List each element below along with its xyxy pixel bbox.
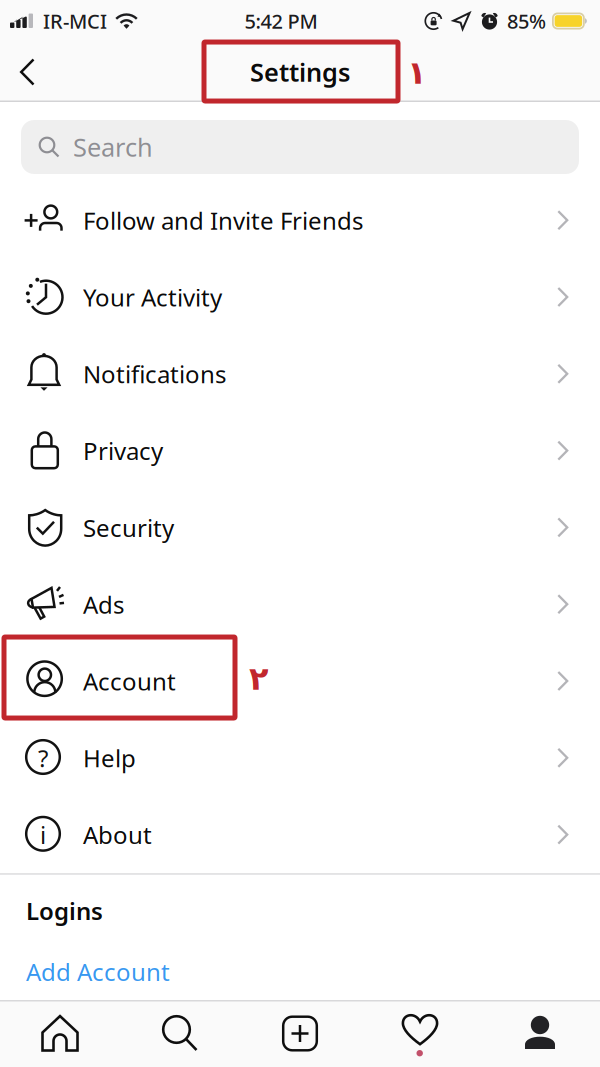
staticText: Privacy [83,435,163,467]
staticText: Search [73,130,153,164]
button[interactable]: Profile [480,1014,600,1052]
button[interactable]: Home [0,1014,120,1052]
staticText: Notifications [83,358,226,390]
staticText: IR-MCI [43,8,107,34]
staticText: Account [83,665,176,697]
button[interactable]: Account [0,643,600,720]
button[interactable]: Your Activity [0,259,600,336]
button[interactable]: Add Account [0,947,600,997]
staticText: ۲ [249,660,269,697]
staticText: Add Account [26,956,170,988]
staticText: i [40,819,46,851]
button[interactable]: New post [240,1014,360,1052]
staticText: ۱ [407,54,427,91]
staticText: ? [38,742,48,774]
button[interactable]: Notifications [0,336,600,412]
staticText: Logins [26,895,103,927]
button[interactable]: Back [0,42,55,102]
button[interactable]: Follow and Invite Friends [0,182,600,259]
staticText: Your Activity [83,281,222,313]
button[interactable]: Privacy [0,412,600,489]
staticText: 85% [507,8,546,34]
staticText: 5:42 PM [244,8,317,34]
button[interactable]: Search [120,1014,240,1052]
staticText: About [83,819,152,851]
staticText: Ads [83,588,124,620]
staticText: Help [83,742,136,774]
button[interactable]: ? [0,720,600,796]
staticText: Settings [250,55,350,89]
button[interactable]: Security [0,489,600,566]
staticText: Security [83,512,174,544]
staticText: Follow and Invite Friends [83,204,363,236]
button[interactable]: Activity [360,1010,480,1057]
button[interactable]: Ads [0,566,600,643]
button[interactable]: i [0,796,600,873]
